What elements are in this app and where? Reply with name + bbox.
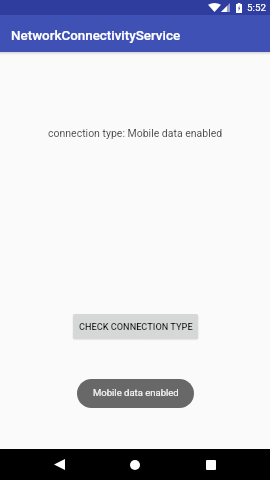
staticText: connection type: Mobile data enabled [48,127,223,139]
button[interactable]: Home [118,449,152,480]
staticText: Mobile data enabled [93,387,179,398]
staticText: CHECK CONNECTION TYPE [79,321,193,332]
staticText: 5:52 [247,2,266,13]
button[interactable]: Back [42,449,76,480]
staticText: NetworkConnectivityService [11,28,181,44]
button[interactable]: Recents [194,449,228,480]
button[interactable]: CHECK CONNECTION TYPE [73,314,198,339]
